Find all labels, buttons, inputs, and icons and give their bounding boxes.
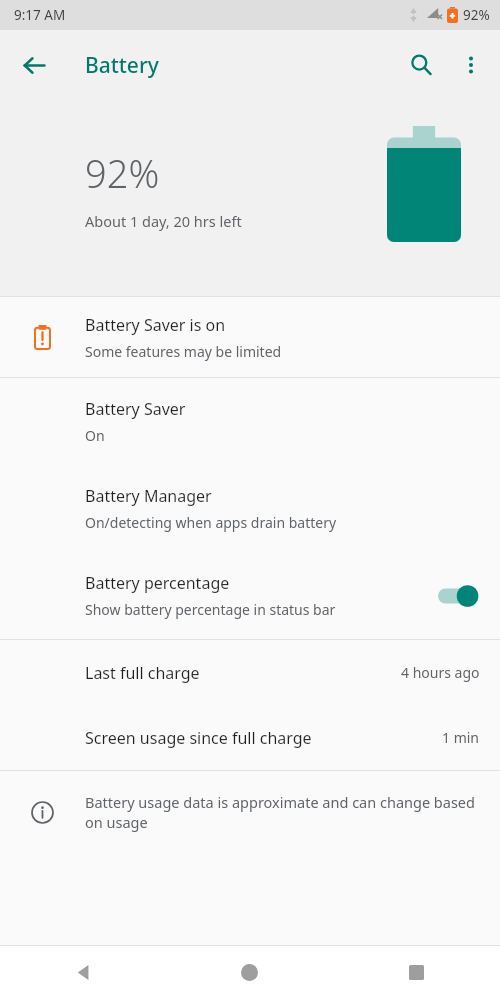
staticText: Battery bbox=[85, 51, 159, 80]
button[interactable]: Screen usage since full charge bbox=[0, 705, 500, 770]
staticText: Some features may be limited bbox=[85, 342, 282, 361]
button[interactable]: More options bbox=[446, 40, 496, 90]
staticText: About 1 day, 20 hrs left bbox=[85, 211, 242, 231]
button[interactable]: Battery Saver bbox=[0, 378, 500, 465]
staticText: Screen usage since full charge bbox=[85, 727, 442, 749]
staticText: 9:17 AM bbox=[14, 6, 66, 24]
staticText: 92% bbox=[85, 147, 160, 199]
staticText: Battery Manager bbox=[85, 485, 212, 507]
staticText: Battery percentage bbox=[85, 572, 230, 594]
button[interactable]: Battery percentage bbox=[0, 552, 500, 639]
button[interactable]: Battery Saver is on bbox=[0, 297, 500, 377]
button[interactable]: Navigate up bbox=[10, 41, 58, 89]
staticText: Battery Saver is on bbox=[85, 314, 226, 336]
staticText: On/detecting when apps drain battery bbox=[85, 513, 337, 532]
staticText: Last full charge bbox=[85, 662, 401, 684]
staticText: 4 hours ago bbox=[401, 663, 480, 682]
button[interactable]: Search bbox=[396, 40, 446, 90]
staticText: On bbox=[85, 426, 105, 445]
staticText: Battery usage data is approximate and ca… bbox=[85, 792, 476, 832]
button[interactable]: Back bbox=[0, 946, 166, 999]
button[interactable]: Home bbox=[166, 946, 333, 999]
button[interactable]: Last full charge bbox=[0, 640, 500, 705]
button[interactable]: Recent apps bbox=[333, 946, 500, 999]
staticText: Battery Saver bbox=[85, 398, 186, 420]
staticText: 1 min bbox=[442, 728, 480, 747]
staticText: Show battery percentage in status bar bbox=[85, 600, 336, 619]
staticText: 92% bbox=[463, 6, 490, 24]
button[interactable]: Battery Manager bbox=[0, 465, 500, 552]
